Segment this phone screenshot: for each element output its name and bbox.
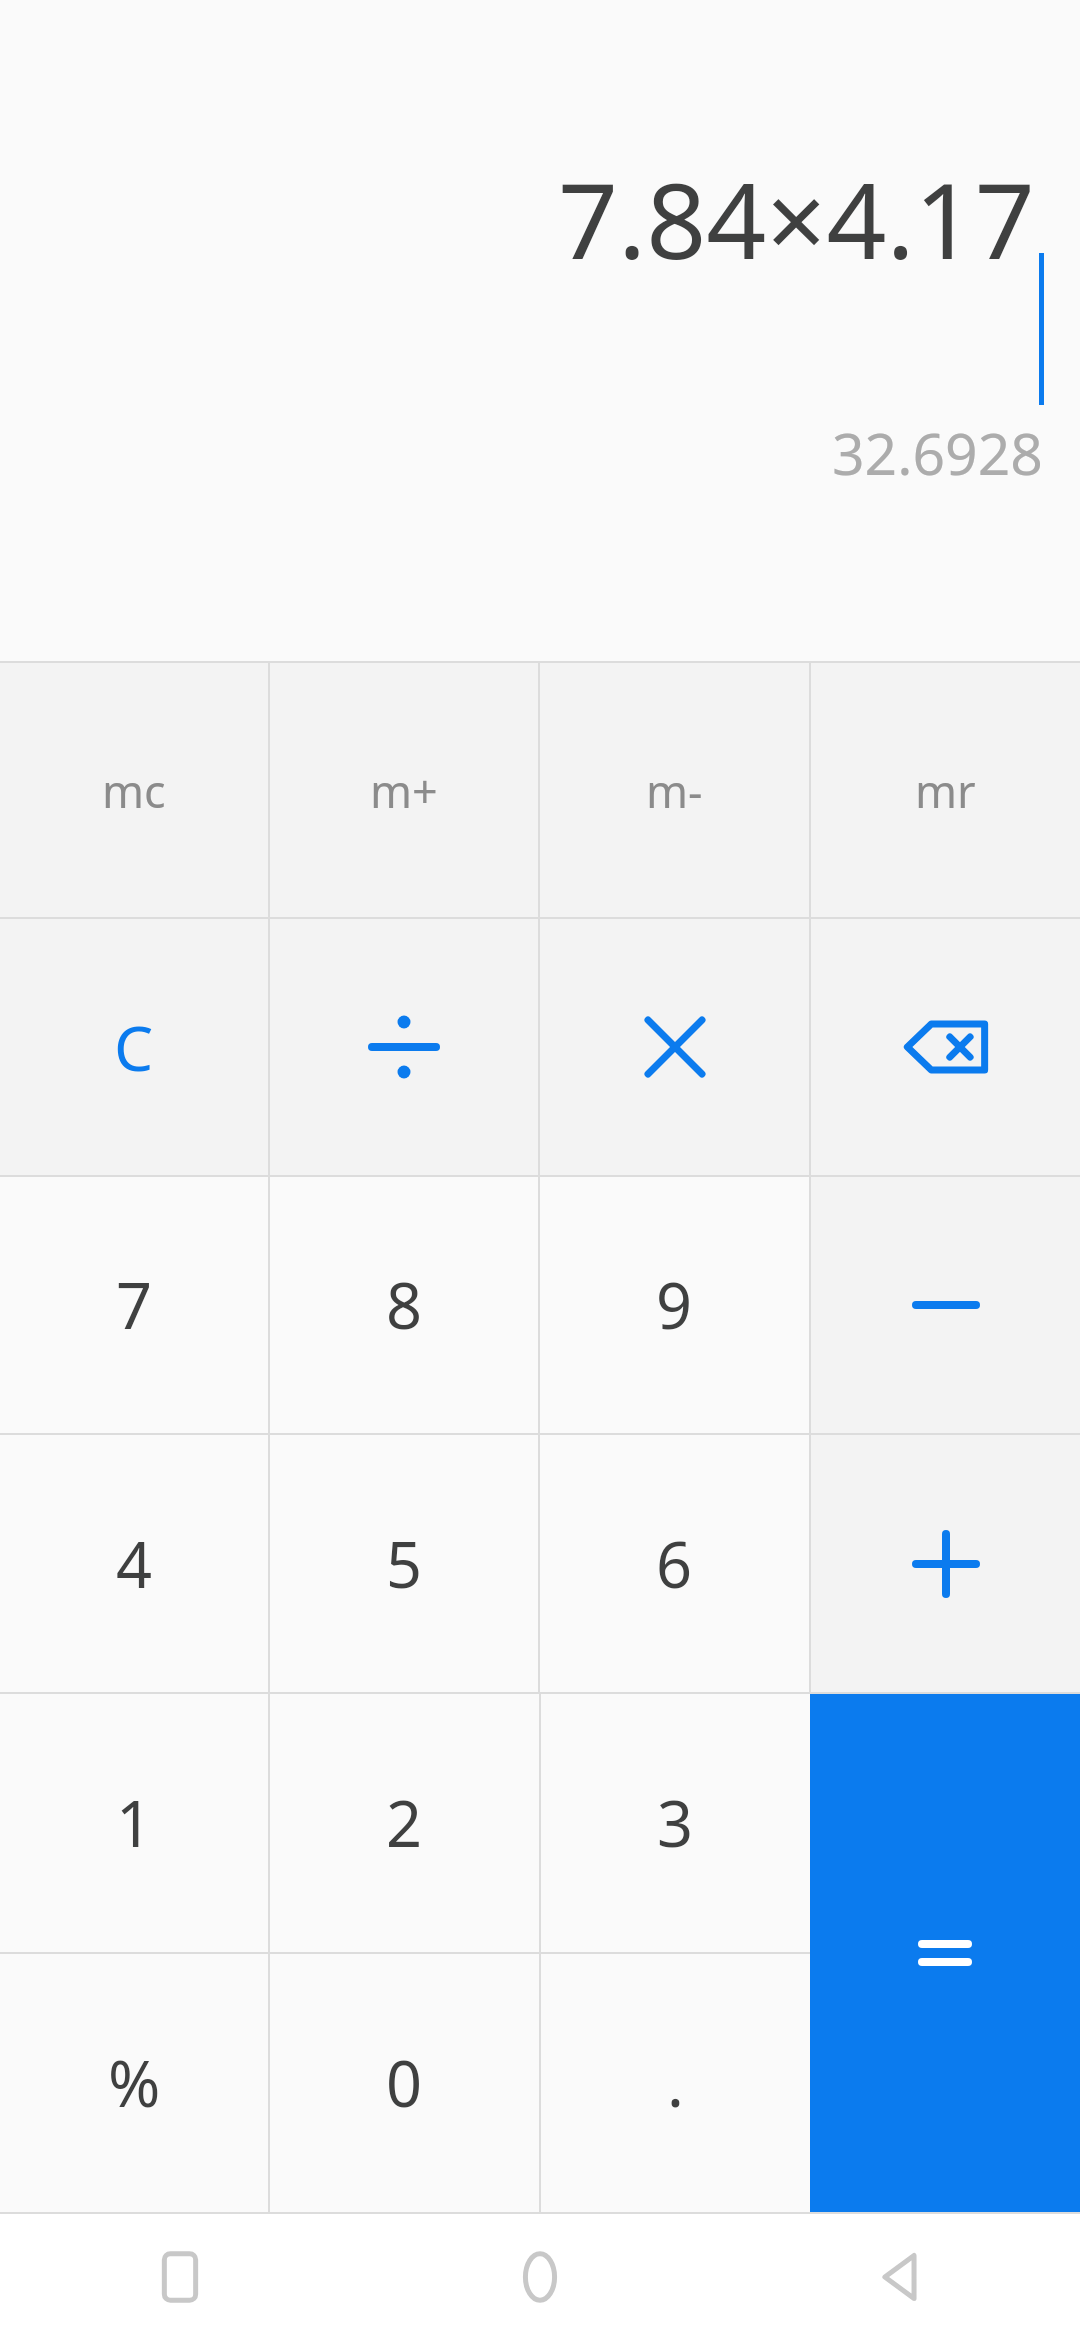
- button[interactable]: Back: [720, 2214, 1080, 2340]
- staticText: mc: [102, 760, 166, 821]
- staticText: 8: [386, 1262, 423, 1348]
- staticText: .: [667, 2040, 684, 2126]
- button[interactable]: 8: [270, 1177, 538, 1433]
- button[interactable]: Backspace: [811, 919, 1080, 1175]
- staticText: 6: [656, 1521, 693, 1607]
- staticText: 7.84×4.17: [558, 147, 1035, 290]
- button[interactable]: Plus: [811, 1435, 1080, 1692]
- button[interactable]: 0: [270, 1954, 539, 2212]
- staticText: mr: [915, 760, 976, 821]
- button[interactable]: mc: [0, 663, 268, 917]
- staticText: 3: [657, 1780, 694, 1866]
- button[interactable]: m+: [270, 663, 538, 917]
- button[interactable]: Equals: [810, 1694, 1080, 2212]
- staticText: 2: [386, 1780, 423, 1866]
- button[interactable]: 5: [270, 1435, 538, 1692]
- button[interactable]: Clear: [0, 919, 268, 1175]
- button[interactable]: 4: [0, 1435, 268, 1692]
- button[interactable]: Minus: [811, 1177, 1080, 1433]
- staticText: 4: [116, 1521, 153, 1607]
- staticText: 1: [116, 1780, 153, 1866]
- button[interactable]: Multiply: [540, 919, 809, 1175]
- staticText: 5: [386, 1521, 423, 1607]
- button[interactable]: 9: [540, 1177, 809, 1433]
- staticText: 9: [656, 1262, 693, 1348]
- button[interactable]: 1: [0, 1694, 268, 1952]
- staticText: 0: [386, 2040, 423, 2126]
- button[interactable]: 6: [540, 1435, 809, 1692]
- button[interactable]: 7: [0, 1177, 268, 1433]
- button[interactable]: mr: [811, 663, 1080, 917]
- button[interactable]: .: [541, 1954, 810, 2212]
- staticText: 32.6928: [832, 414, 1043, 492]
- button[interactable]: 3: [541, 1694, 810, 1952]
- staticText: %: [108, 2040, 161, 2126]
- button[interactable]: m-: [540, 663, 809, 917]
- button[interactable]: %: [0, 1954, 268, 2212]
- staticText: m+: [370, 760, 438, 821]
- button[interactable]: Divide: [270, 919, 538, 1175]
- staticText: m-: [646, 760, 703, 821]
- button[interactable]: Recents: [0, 2214, 360, 2340]
- staticText: C: [114, 1005, 154, 1089]
- staticText: 7: [116, 1262, 153, 1348]
- button[interactable]: Home: [360, 2214, 720, 2340]
- button[interactable]: 2: [270, 1694, 539, 1952]
